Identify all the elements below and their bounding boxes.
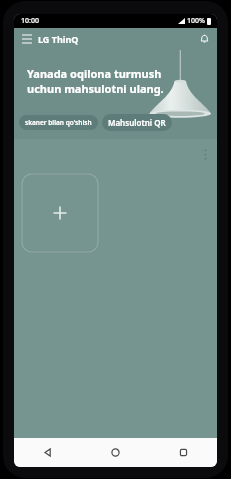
button[interactable]: Notifications bbox=[195, 30, 213, 48]
button[interactable]: skaner bilan qo'shish bbox=[19, 115, 98, 130]
staticText: Mahsulotni QR bbox=[108, 117, 166, 128]
button[interactable]: Home bbox=[81, 438, 149, 467]
button[interactable]: Recent apps bbox=[149, 438, 217, 467]
button[interactable]: Add device bbox=[22, 174, 98, 252]
staticText: 10:00 bbox=[21, 16, 39, 26]
button[interactable]: Menu bbox=[18, 30, 36, 48]
staticText: Yanada oqilona turmush bbox=[27, 66, 162, 81]
button[interactable]: Back bbox=[14, 438, 81, 467]
staticText: uchun mahsulotni ulang. bbox=[27, 81, 164, 96]
staticText: LG ThinQ bbox=[38, 33, 79, 45]
staticText: skaner bilan qo'shish bbox=[25, 118, 92, 127]
button[interactable]: Mahsulotni QR bbox=[102, 114, 172, 131]
staticText: 100% bbox=[187, 16, 205, 26]
